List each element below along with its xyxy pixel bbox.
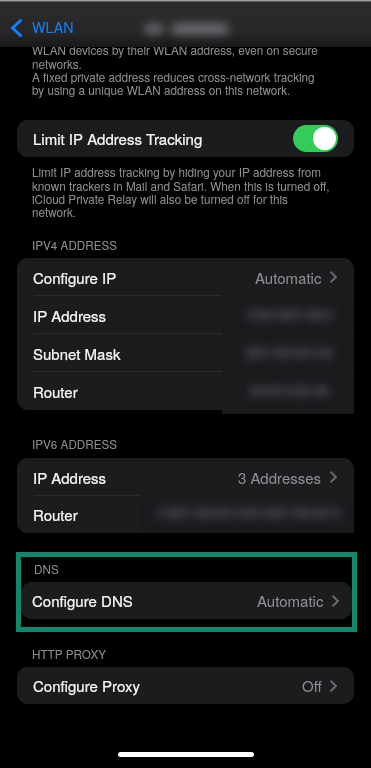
button[interactable]: Configure DNS [21, 582, 352, 619]
button[interactable]: Back to WLAN [0, 15, 81, 44]
staticText: Configure DNS [32, 590, 133, 611]
staticText: Limit IP Address Tracking [33, 128, 203, 149]
staticText: Automatic [255, 267, 322, 288]
button[interactable]: Router [17, 372, 354, 410]
staticText: Configure Proxy [33, 675, 140, 696]
button[interactable]: Router [17, 496, 354, 533]
button[interactable]: Subnet Mask [17, 334, 354, 372]
staticText: Subnet Mask [33, 343, 121, 364]
staticText: IP Address [33, 305, 107, 326]
staticText: WLAN [32, 17, 74, 37]
staticText: Automatic [257, 590, 324, 611]
staticText: IPV4 ADDRESS [32, 237, 118, 254]
staticText: 3 Addresses [238, 467, 322, 488]
staticText: Configure IP [33, 267, 117, 288]
staticText: WLAN devices by their WLAN address, even… [32, 42, 318, 98]
staticText: IP Address [33, 467, 107, 488]
staticText: Limit IP address tracking by hiding your… [32, 164, 330, 220]
staticText: HTTP PROXY [32, 646, 106, 663]
button[interactable]: Limit IP Address Tracking, on [293, 125, 338, 152]
button[interactable]: Limit IP Address Tracking [17, 120, 354, 157]
button[interactable]: Configure Proxy [17, 667, 354, 704]
button[interactable]: Configure IP [17, 258, 354, 296]
staticText: DNS [34, 561, 59, 578]
staticText: IPV6 ADDRESS [32, 436, 118, 453]
button[interactable]: IP Address [17, 458, 354, 496]
staticText: Off [302, 675, 322, 696]
staticText: Router [33, 504, 78, 525]
staticText: Router [33, 381, 78, 402]
button[interactable]: IP Address [17, 296, 354, 334]
